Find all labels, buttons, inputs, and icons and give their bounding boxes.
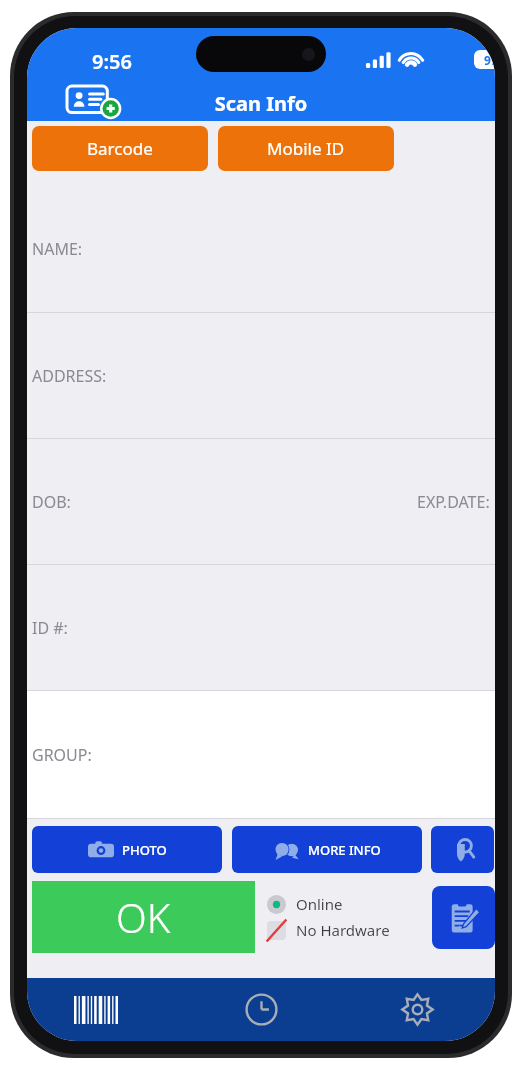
- button[interactable]: Barcode: [27, 978, 183, 1041]
- button[interactable]: Settings: [339, 978, 495, 1041]
- staticText: ADDRESS:: [32, 365, 107, 387]
- staticText: Barcode: [87, 137, 153, 160]
- button[interactable]: DOB:: [27, 439, 495, 564]
- staticText: Online: [296, 894, 343, 914]
- button[interactable]: MORE INFO: [232, 826, 422, 873]
- staticText: 97: [484, 52, 495, 68]
- staticText: GROUP:: [32, 744, 92, 766]
- staticText: NAME:: [32, 238, 83, 260]
- staticText: ID #:: [32, 617, 68, 639]
- button[interactable]: PHOTO: [32, 826, 222, 873]
- button[interactable]: Add ID card: [67, 84, 123, 118]
- button[interactable]: GROUP:: [27, 691, 495, 818]
- staticText: 9:56: [92, 48, 132, 75]
- staticText: Scan Info: [27, 90, 495, 117]
- button[interactable]: NAME:: [27, 186, 495, 312]
- button[interactable]: History: [183, 978, 339, 1041]
- button[interactable]: ID #:: [27, 565, 495, 690]
- staticText: DOB:: [32, 491, 71, 513]
- staticText: No Hardware: [296, 920, 390, 940]
- button[interactable]: ADDRESS:: [27, 313, 495, 438]
- staticText: Mobile ID: [267, 137, 345, 160]
- button[interactable]: Barcode: [32, 126, 208, 171]
- button[interactable]: OK: [32, 881, 255, 953]
- staticText: PHOTO: [122, 841, 167, 859]
- staticText: MORE INFO: [308, 841, 381, 859]
- staticText: OK: [116, 890, 171, 944]
- button[interactable]: Mobile ID: [218, 126, 394, 171]
- button[interactable]: Signature form: [432, 886, 495, 949]
- button[interactable]: Verify identity: [431, 826, 494, 873]
- staticText: EXP.DATE:: [417, 491, 490, 513]
